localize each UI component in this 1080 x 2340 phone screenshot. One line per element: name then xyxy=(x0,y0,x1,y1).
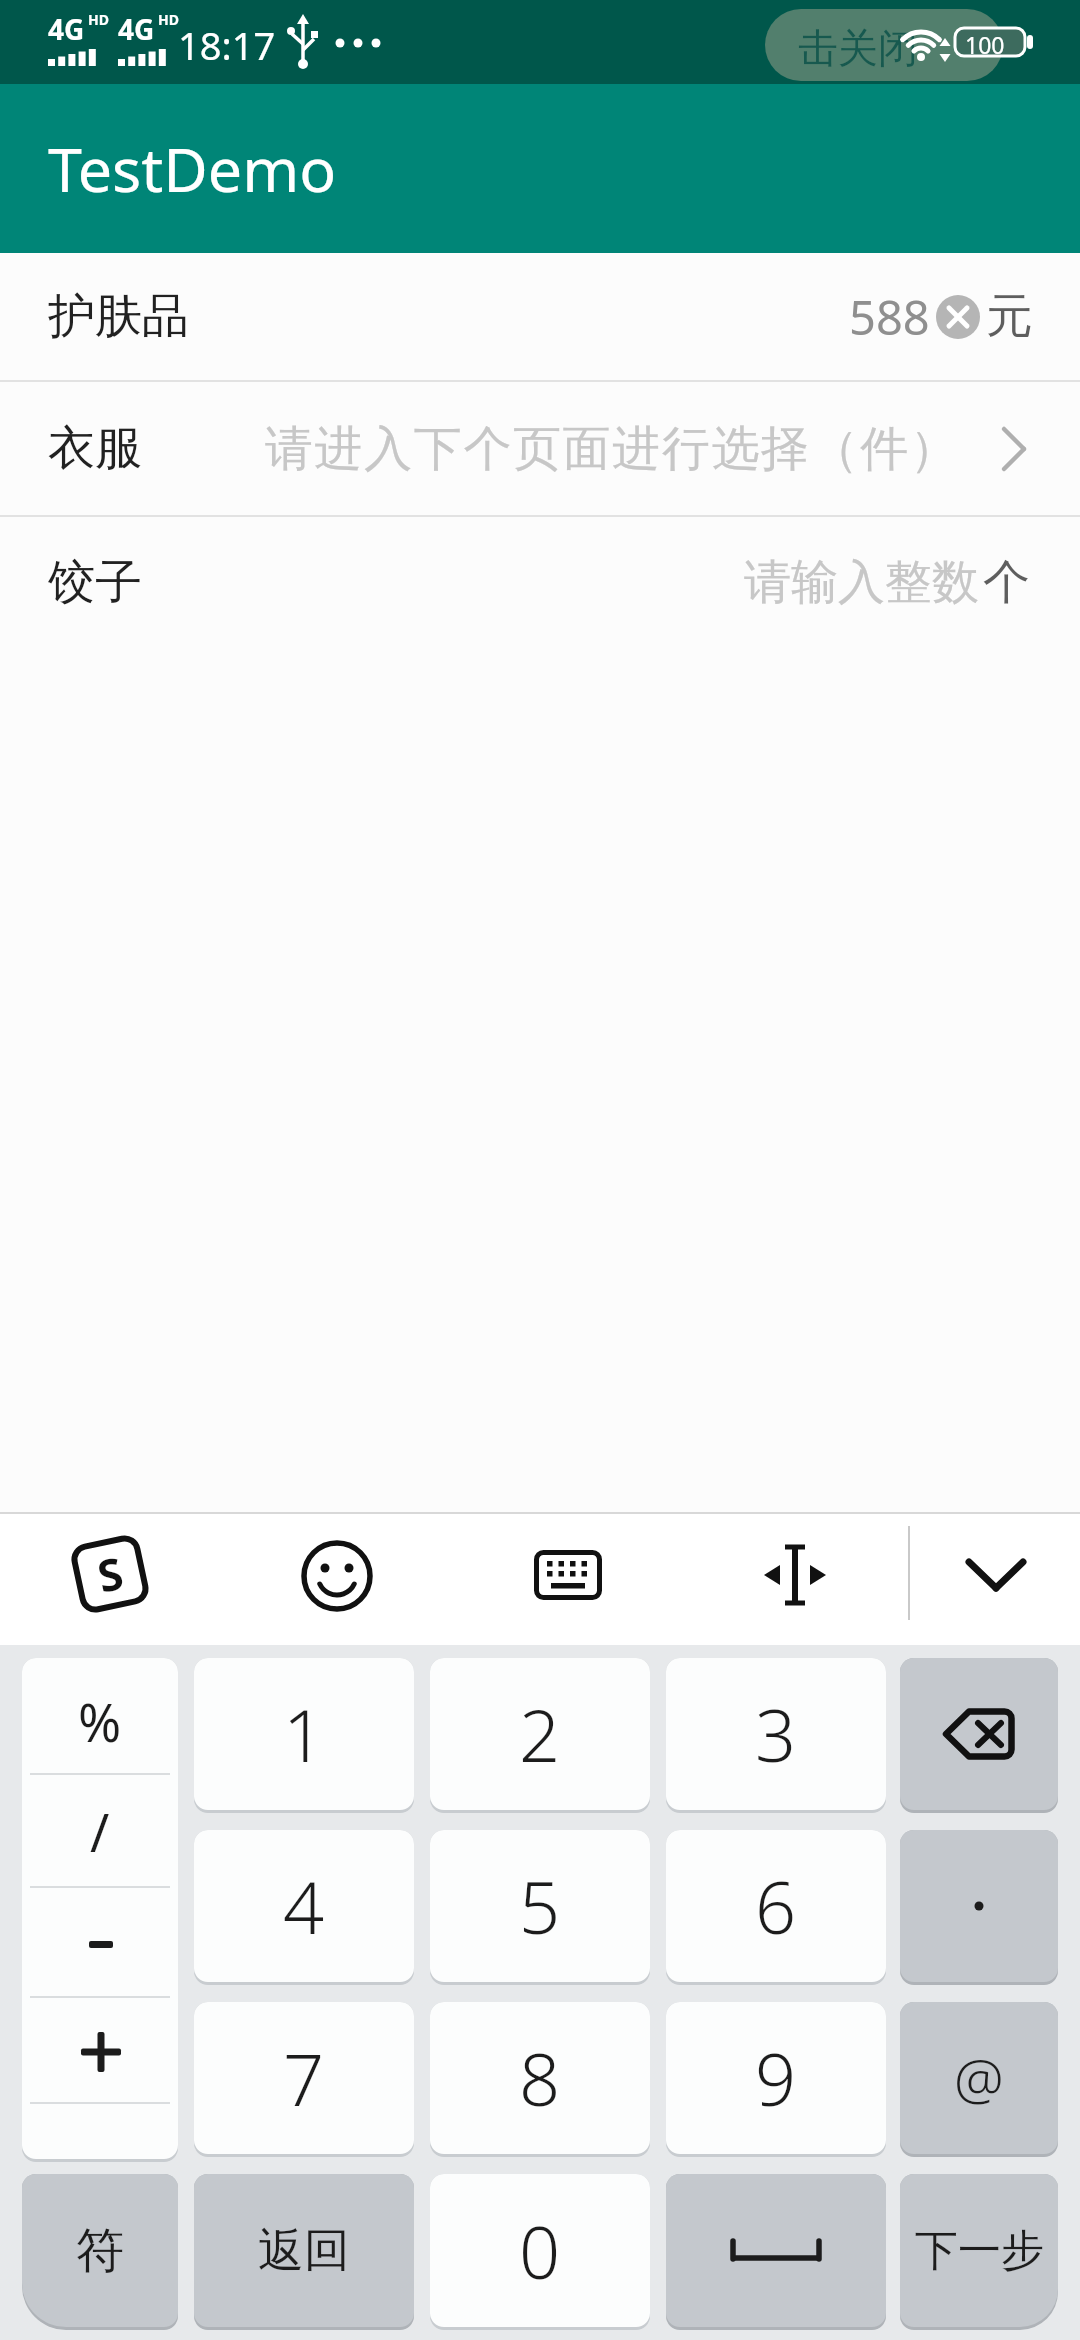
staticText: 100 xyxy=(965,29,1005,60)
staticText: 4G xyxy=(48,10,85,48)
staticText: 元 xyxy=(986,287,1033,346)
button[interactable] xyxy=(534,1550,602,1600)
staticText: 符 xyxy=(76,2221,124,2281)
button[interactable]: 0 xyxy=(430,2174,650,2330)
staticText: / xyxy=(90,1796,110,1867)
staticText: 4 xyxy=(283,1857,325,1955)
staticText: 个 xyxy=(983,553,1030,612)
staticText: 返回 xyxy=(258,2222,350,2280)
staticText: 6 xyxy=(755,1857,797,1955)
button[interactable] xyxy=(900,1658,1058,1813)
staticText: 4G xyxy=(118,10,155,48)
staticText: 1 xyxy=(283,1685,325,1783)
staticText: 衣服 xyxy=(48,419,142,478)
button[interactable]: @ xyxy=(900,2002,1058,2157)
staticText: @ xyxy=(954,2040,1004,2116)
button[interactable]: S xyxy=(75,1539,145,1609)
button[interactable]: 下一步 xyxy=(900,2174,1058,2330)
staticText: 9 xyxy=(755,2029,797,2127)
staticText: 下一步 xyxy=(915,2224,1044,2278)
staticText: 588 xyxy=(849,285,930,349)
staticText: 7 xyxy=(283,2029,325,2127)
button[interactable]: 4 xyxy=(194,1830,414,1985)
button[interactable]: 返回 xyxy=(194,2174,414,2330)
staticText: TestDemo xyxy=(48,127,337,210)
staticText: 0 xyxy=(519,2202,561,2300)
button[interactable]: 符 xyxy=(22,2174,178,2330)
button[interactable]: 1 xyxy=(194,1658,414,1813)
staticText: 18:17 xyxy=(178,19,276,71)
staticText: 击关闭 xyxy=(798,23,918,73)
staticText: 请进入下个页面进行选择（件） xyxy=(265,419,960,479)
button[interactable] xyxy=(301,1540,373,1612)
button[interactable] xyxy=(756,1543,834,1607)
staticText: HD xyxy=(88,10,109,29)
staticText: S xyxy=(92,1542,129,1606)
staticText: 饺子 xyxy=(48,553,142,612)
button[interactable]: 7 xyxy=(194,2002,414,2157)
staticText: 5 xyxy=(519,1857,561,1955)
button[interactable] xyxy=(666,2174,886,2330)
staticText: 8 xyxy=(519,2029,561,2127)
staticText: HD xyxy=(158,10,179,29)
button[interactable]: 5 xyxy=(430,1830,650,1985)
button[interactable]: 衣服 xyxy=(0,382,1080,515)
button[interactable]: 护肤品 xyxy=(0,253,1080,380)
button[interactable] xyxy=(900,1830,1058,1985)
button[interactable] xyxy=(966,1558,1026,1592)
button[interactable]: 6 xyxy=(666,1830,886,1985)
button[interactable]: % xyxy=(22,1658,178,2162)
button[interactable]: 饺子 xyxy=(0,517,1080,648)
button[interactable]: 9 xyxy=(666,2002,886,2157)
button[interactable]: 2 xyxy=(430,1658,650,1813)
staticText: 2 xyxy=(519,1685,561,1783)
staticText: 护肤品 xyxy=(48,287,189,346)
button[interactable]: 8 xyxy=(430,2002,650,2157)
staticText: % xyxy=(78,1686,122,1757)
button[interactable]: 3 xyxy=(666,1658,886,1813)
staticText: 3 xyxy=(755,1685,797,1783)
button[interactable] xyxy=(936,295,980,339)
staticText: 请输入整数 xyxy=(744,553,979,612)
